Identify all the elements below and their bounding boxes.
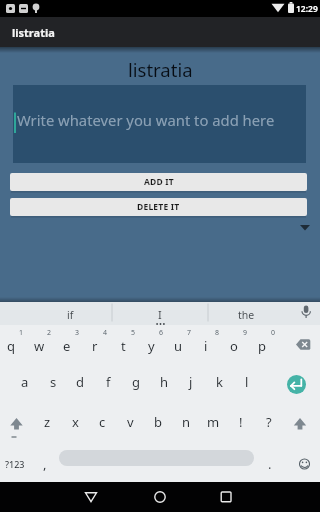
button[interactable]: f (96, 369, 120, 395)
button[interactable]: h (152, 369, 176, 395)
staticText: . (268, 455, 272, 473)
button[interactable]: ?123 (1, 453, 29, 475)
button[interactable]: r (83, 333, 107, 359)
staticText: c (99, 413, 106, 431)
staticText: e (63, 337, 71, 355)
button[interactable]: g (124, 369, 148, 395)
button[interactable]: the (216, 304, 276, 326)
staticText: listratia (128, 57, 193, 81)
button[interactable] (76, 485, 106, 509)
button[interactable]: y (139, 333, 163, 359)
staticText: Write whatever you want to add here (17, 110, 275, 130)
staticText: d (76, 373, 84, 391)
staticText: DELETE IT (137, 201, 180, 213)
button[interactable]: d (68, 369, 92, 395)
button[interactable] (211, 485, 241, 509)
staticText: k (216, 373, 223, 391)
button[interactable] (287, 375, 306, 394)
staticText: ADD IT (144, 176, 174, 188)
staticText: z (44, 413, 51, 431)
staticText: 7 (187, 328, 192, 338)
staticText: , (43, 455, 47, 473)
staticText: 6 (159, 328, 164, 338)
button[interactable]: ! (229, 409, 253, 435)
staticText: x (72, 413, 79, 431)
button[interactable]: q (0, 333, 23, 359)
staticText: i (204, 337, 208, 355)
button[interactable]: , (35, 453, 55, 475)
button[interactable]: t (111, 333, 135, 359)
button[interactable]: Write whatever you want to add here (13, 85, 306, 163)
button[interactable] (59, 450, 254, 466)
staticText: y (148, 337, 155, 355)
button[interactable]: c (90, 409, 114, 435)
staticText: 5 (131, 328, 136, 338)
staticText: s (50, 373, 57, 391)
button[interactable]: l (235, 369, 259, 395)
staticText: 0 (271, 328, 276, 338)
button[interactable]: if (40, 304, 100, 326)
staticText: r (92, 337, 98, 355)
staticText: ! (239, 413, 243, 431)
staticText: I (158, 307, 162, 322)
button[interactable]: j (179, 369, 203, 395)
staticText: q (7, 337, 15, 355)
button[interactable]: s (41, 369, 65, 395)
button[interactable]: o (222, 333, 246, 359)
button[interactable]: z (35, 409, 59, 435)
button[interactable]: I (130, 303, 190, 325)
button[interactable]: w (27, 333, 51, 359)
staticText: a (21, 373, 29, 391)
staticText: w (34, 337, 45, 355)
staticText: 12:29 (296, 3, 318, 15)
button[interactable]: x (63, 409, 87, 435)
button[interactable]: e (55, 333, 79, 359)
button[interactable]: a (13, 369, 37, 395)
button[interactable]: v (118, 409, 142, 435)
staticText: 1 (19, 328, 24, 338)
staticText: p (258, 337, 266, 355)
button[interactable]: DELETE IT (10, 198, 307, 216)
staticText: m (207, 413, 220, 431)
button[interactable]: i (194, 333, 218, 359)
button[interactable]: . (260, 453, 280, 475)
staticText: b (154, 413, 162, 431)
button[interactable]: m (201, 409, 225, 435)
staticText: the (238, 308, 255, 322)
staticText: f (106, 373, 111, 391)
staticText: if (67, 308, 74, 322)
staticText: ? (266, 413, 272, 431)
button[interactable] (145, 485, 175, 509)
staticText: o (230, 337, 238, 355)
staticText: u (174, 337, 183, 355)
button[interactable]: n (174, 409, 198, 435)
staticText: g (132, 373, 140, 391)
staticText: n (182, 413, 191, 431)
button[interactable]: b (146, 409, 170, 435)
staticText: 2 (47, 328, 52, 338)
staticText: 8 (215, 328, 220, 338)
staticText: 9 (243, 328, 248, 338)
staticText: l (245, 373, 249, 391)
staticText: j (189, 373, 193, 391)
staticText: v (127, 413, 134, 431)
staticText: listratia (12, 25, 55, 40)
button[interactable]: k (207, 369, 231, 395)
button[interactable]: ? (257, 409, 281, 435)
button[interactable]: ADD IT (10, 173, 307, 191)
staticText: ?123 (5, 458, 25, 470)
staticText: t (121, 337, 126, 355)
button[interactable]: p (250, 333, 274, 359)
staticText: 3 (75, 328, 80, 338)
button[interactable]: u (166, 333, 190, 359)
staticText: h (160, 373, 169, 391)
staticText: 4 (103, 328, 108, 338)
